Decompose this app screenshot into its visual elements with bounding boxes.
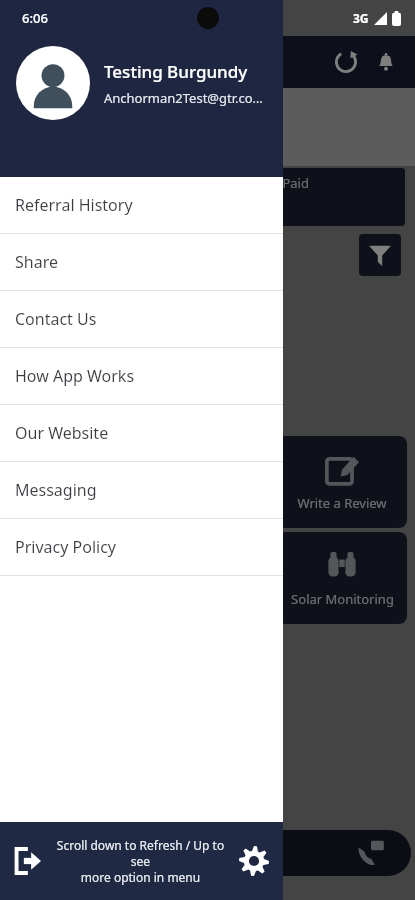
button[interactable]: Solar Monitoring bbox=[277, 532, 407, 624]
button[interactable]: Refresh bbox=[331, 47, 361, 77]
staticText: GTR bbox=[50, 52, 79, 72]
button[interactable]: Privacy Policy bbox=[0, 519, 283, 575]
button[interactable]: Filter bbox=[359, 234, 401, 276]
staticText: Testing Burgundy bbox=[104, 60, 248, 83]
staticText: AN bbox=[230, 104, 288, 150]
button[interactable]: Our Website bbox=[0, 405, 283, 461]
staticText: Messaging bbox=[15, 479, 97, 501]
staticText: Solar Monitoring bbox=[291, 590, 394, 608]
staticText: Scroll down to Refresh / Up to see more … bbox=[52, 837, 229, 885]
staticText: 6:06 bbox=[22, 9, 48, 27]
button[interactable]: Messaging bbox=[0, 462, 283, 518]
staticText: Contact Us bbox=[15, 308, 97, 330]
button[interactable]: Write a Review bbox=[277, 436, 407, 528]
staticText: Referral History bbox=[15, 194, 133, 216]
staticText: Privacy Policy bbox=[15, 536, 116, 558]
button[interactable]: How App Works bbox=[0, 348, 283, 404]
button[interactable]: Call bbox=[221, 830, 411, 876]
button[interactable]: Notifications bbox=[371, 47, 401, 77]
button[interactable]: Rewards Paid bbox=[215, 168, 405, 226]
button[interactable]: Settings bbox=[233, 840, 275, 882]
staticText: Rewards Paid bbox=[227, 174, 309, 192]
button[interactable]: Referral History bbox=[0, 177, 283, 233]
staticText: Share bbox=[15, 251, 58, 273]
staticText: Anchorman2Test@gtr.co… bbox=[104, 89, 263, 107]
button[interactable]: Log out bbox=[8, 841, 48, 881]
staticText: 3G bbox=[353, 10, 369, 26]
staticText: How App Works bbox=[15, 365, 135, 387]
staticText: Write a Review bbox=[297, 494, 387, 512]
button[interactable]: Share bbox=[0, 234, 283, 290]
button[interactable]: Profile photo bbox=[16, 46, 90, 120]
button[interactable]: Menu bbox=[14, 49, 40, 75]
button[interactable]: Contact Us bbox=[0, 291, 283, 347]
staticText: Our Website bbox=[15, 422, 109, 444]
